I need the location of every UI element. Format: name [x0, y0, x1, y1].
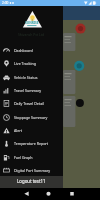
- button[interactable]: Live Tracking: [0, 57, 63, 70]
- button[interactable]: Dashboard: [0, 44, 63, 57]
- staticText: Logout test11: [17, 178, 46, 184]
- staticText: SUNRISE: [25, 21, 39, 25]
- staticText: Stoppage Summary: [14, 115, 48, 120]
- button[interactable]: Logout test11: [0, 176, 63, 189]
- staticText: Digital Port Summary: [14, 168, 51, 173]
- staticText: Temperature Report: [14, 141, 49, 146]
- button[interactable]: Daily Travel Detail: [0, 97, 63, 110]
- staticText: Daily Travel Detail: [14, 101, 45, 106]
- button[interactable]: Stoppage Summary: [0, 111, 63, 124]
- button[interactable]: Digital Port Summary: [0, 164, 63, 177]
- button[interactable]: Fuel Graph: [0, 151, 63, 164]
- staticText: Shivansh Pvt Ltd: [18, 32, 45, 37]
- button[interactable]: Temperature Report: [0, 137, 63, 150]
- staticText: Vehicle Status: [14, 75, 38, 80]
- staticText: Live Tracking: [14, 61, 36, 66]
- other: System navigation: [0, 188, 100, 200]
- staticText: Travel Summary: [14, 88, 42, 93]
- button[interactable]: Travel Summary: [0, 84, 63, 97]
- button[interactable]: Vehicle Status: [0, 71, 63, 84]
- staticText: 2:00: [2, 1, 9, 5]
- staticText: Alert: [14, 128, 23, 133]
- staticText: Fuel Graph: [14, 155, 33, 160]
- staticText: Dashboard: [14, 48, 33, 53]
- button[interactable]: Alert: [0, 124, 63, 137]
